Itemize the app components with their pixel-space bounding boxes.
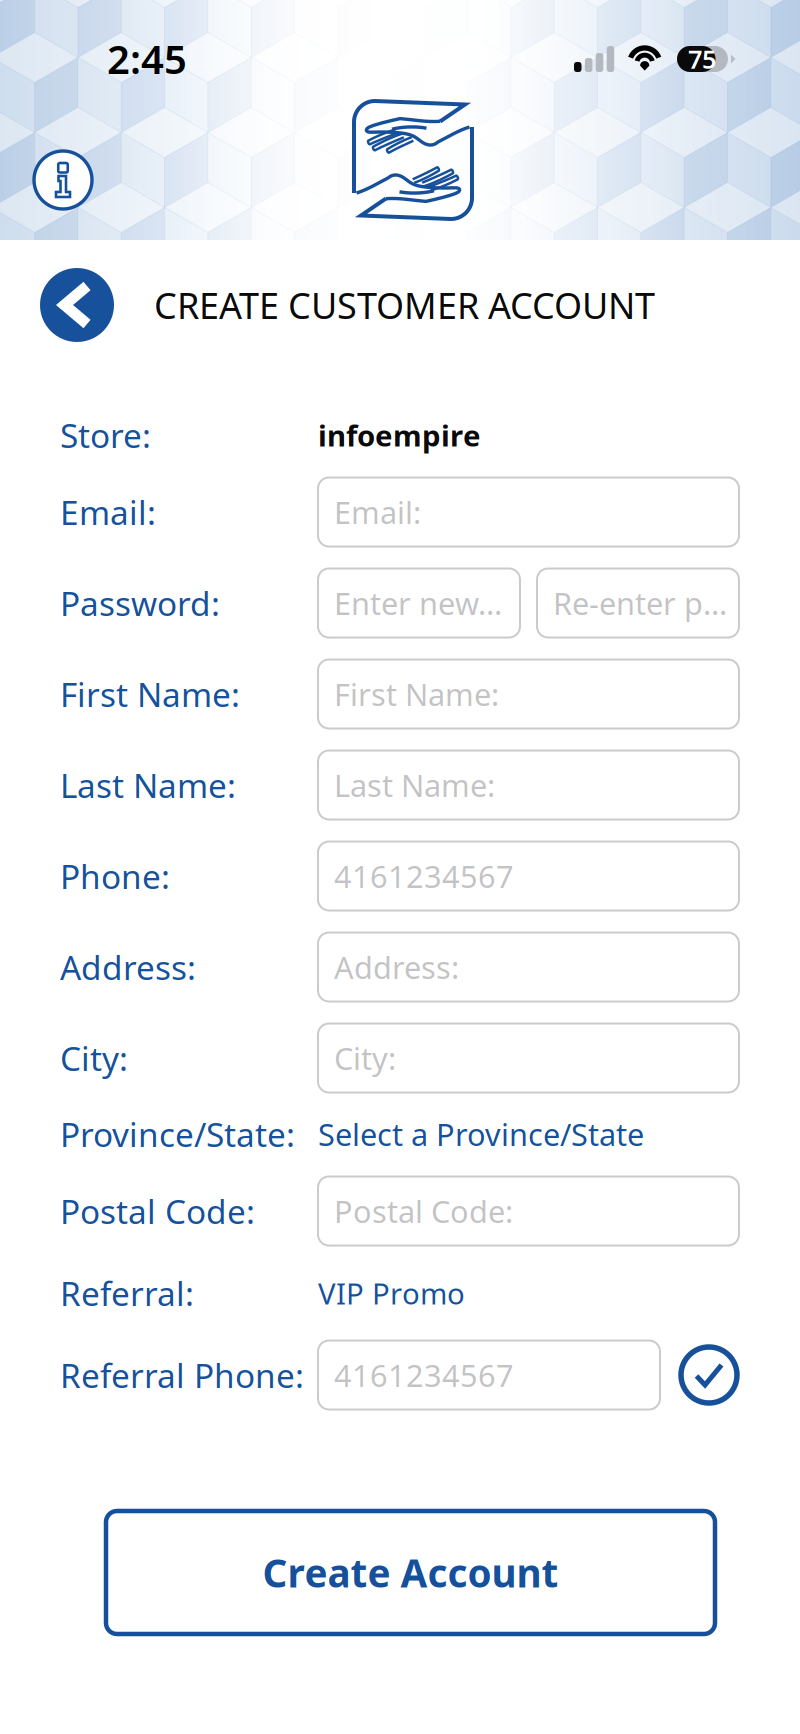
staticText: Province/State: — [60, 1112, 295, 1156]
staticText: Postal Code: — [60, 1189, 255, 1233]
staticText: Store: — [60, 413, 151, 457]
staticText: Postal Code: — [334, 1191, 513, 1231]
staticText: CREATE CUSTOMER ACCOUNT — [154, 281, 655, 329]
staticText: City: — [60, 1036, 128, 1080]
staticText: VIP Promo — [318, 1273, 465, 1312]
staticText: First Name: — [60, 672, 240, 716]
staticText: Re-enter p… — [553, 583, 727, 623]
staticText: 2:45 — [107, 32, 187, 85]
button[interactable]: Create Account — [106, 1511, 715, 1634]
staticText: Referral Phone: — [60, 1353, 304, 1397]
staticText: 4161234567 — [334, 856, 514, 896]
staticText: Enter new… — [334, 583, 502, 623]
staticText: Address: — [334, 947, 459, 987]
staticText: Last Name: — [60, 763, 236, 807]
staticText: Select a Province/State — [318, 1114, 644, 1154]
staticText: Create Account — [262, 1547, 558, 1598]
staticText: First Name: — [334, 674, 499, 714]
staticText: 75 — [688, 42, 716, 76]
button[interactable]: Select a Province/State — [318, 1114, 644, 1154]
staticText: City: — [334, 1038, 396, 1078]
button[interactable]: Information — [30, 147, 96, 213]
staticText: Referral: — [60, 1271, 194, 1315]
staticText: Password: — [60, 581, 220, 625]
staticText: Email: — [60, 490, 156, 534]
staticText: Phone: — [60, 854, 170, 898]
staticText: Address: — [60, 945, 196, 989]
staticText: Email: — [334, 492, 421, 532]
button[interactable]: Back — [38, 266, 116, 344]
staticText: Last Name: — [334, 765, 495, 805]
staticText: infoempire — [318, 415, 481, 454]
staticText: 4161234567 — [334, 1355, 514, 1395]
button[interactable]: Confirm referral phone — [678, 1344, 740, 1406]
